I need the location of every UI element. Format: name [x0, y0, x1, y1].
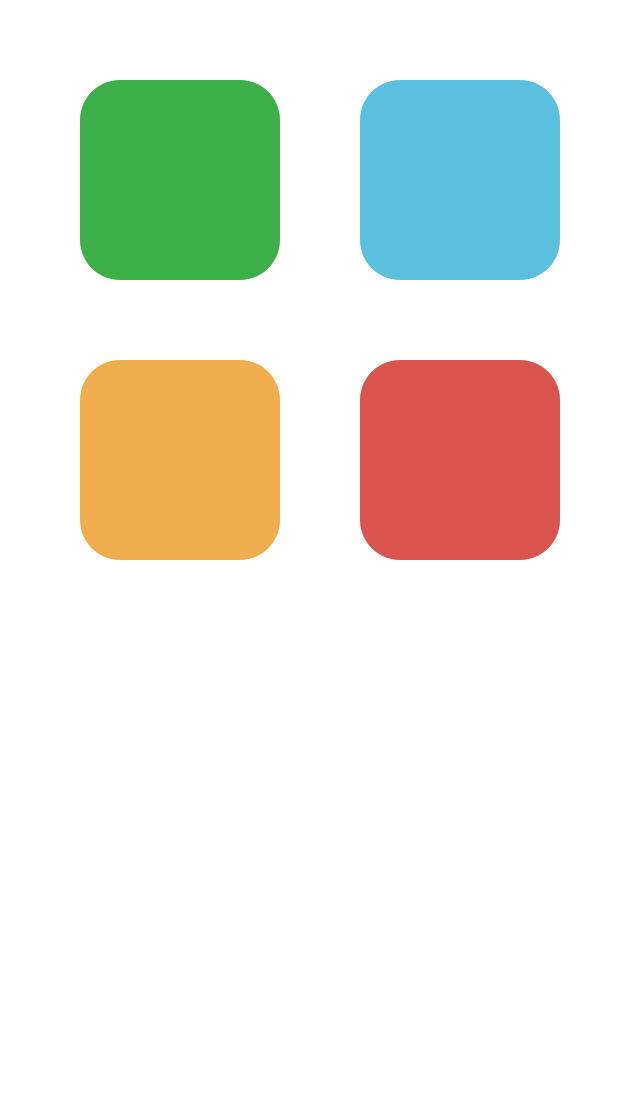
- button[interactable]: Red: [360, 360, 560, 560]
- button[interactable]: Orange: [80, 360, 280, 560]
- button[interactable]: Green: [80, 80, 280, 280]
- button[interactable]: Blue: [360, 80, 560, 280]
